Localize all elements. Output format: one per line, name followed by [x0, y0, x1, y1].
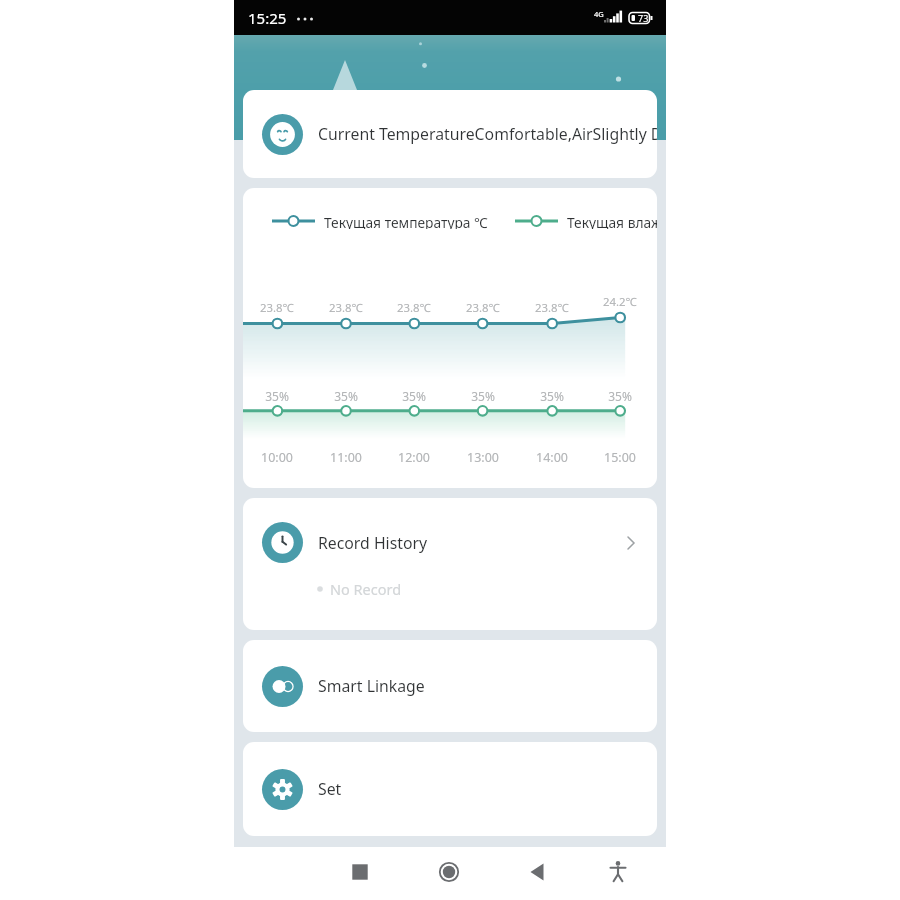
- staticText: Smart Linkage: [318, 675, 425, 697]
- staticText: Текущая влажность %: [567, 213, 657, 229]
- button[interactable]: Back: [508, 847, 568, 897]
- staticText: 15:00: [604, 449, 636, 466]
- button[interactable]: Accessibility: [588, 847, 648, 897]
- staticText: 23.8℃: [466, 300, 500, 316]
- button[interactable]: Set: [243, 742, 657, 836]
- staticText: 14:00: [536, 449, 568, 466]
- staticText: 24.2℃: [603, 294, 637, 310]
- button[interactable]: Current TemperatureComfortable,AirSlight…: [243, 90, 657, 178]
- staticText: Current TemperatureComfortable,AirSlight…: [318, 123, 657, 145]
- staticText: 23.8℃: [329, 300, 363, 316]
- staticText: 35%: [608, 388, 632, 404]
- staticText: 35%: [402, 388, 426, 404]
- staticText: 23.8℃: [535, 300, 569, 316]
- button[interactable]: Home: [419, 847, 479, 897]
- staticText: 35%: [334, 388, 358, 404]
- staticText: Set: [318, 778, 342, 800]
- button[interactable]: Smart Linkage: [243, 640, 657, 732]
- staticText: Текущая температура ℃: [324, 213, 488, 229]
- staticText: 35%: [471, 388, 495, 404]
- staticText: 35%: [265, 388, 289, 404]
- button[interactable]: Recent apps: [330, 847, 390, 897]
- staticText: 4G: [594, 9, 604, 19]
- button[interactable]: Record History: [243, 498, 657, 630]
- staticText: Record History: [318, 532, 428, 554]
- staticText: 13:00: [467, 449, 499, 466]
- staticText: 23.8℃: [397, 300, 431, 316]
- staticText: 73: [638, 12, 649, 24]
- staticText: 12:00: [398, 449, 430, 466]
- staticText: No Record: [330, 579, 402, 599]
- staticText: 15:25: [248, 8, 287, 28]
- staticText: 10:00: [261, 449, 293, 466]
- staticText: 23.8℃: [260, 300, 294, 316]
- staticText: 11:00: [330, 449, 362, 466]
- staticText: 35%: [540, 388, 564, 404]
